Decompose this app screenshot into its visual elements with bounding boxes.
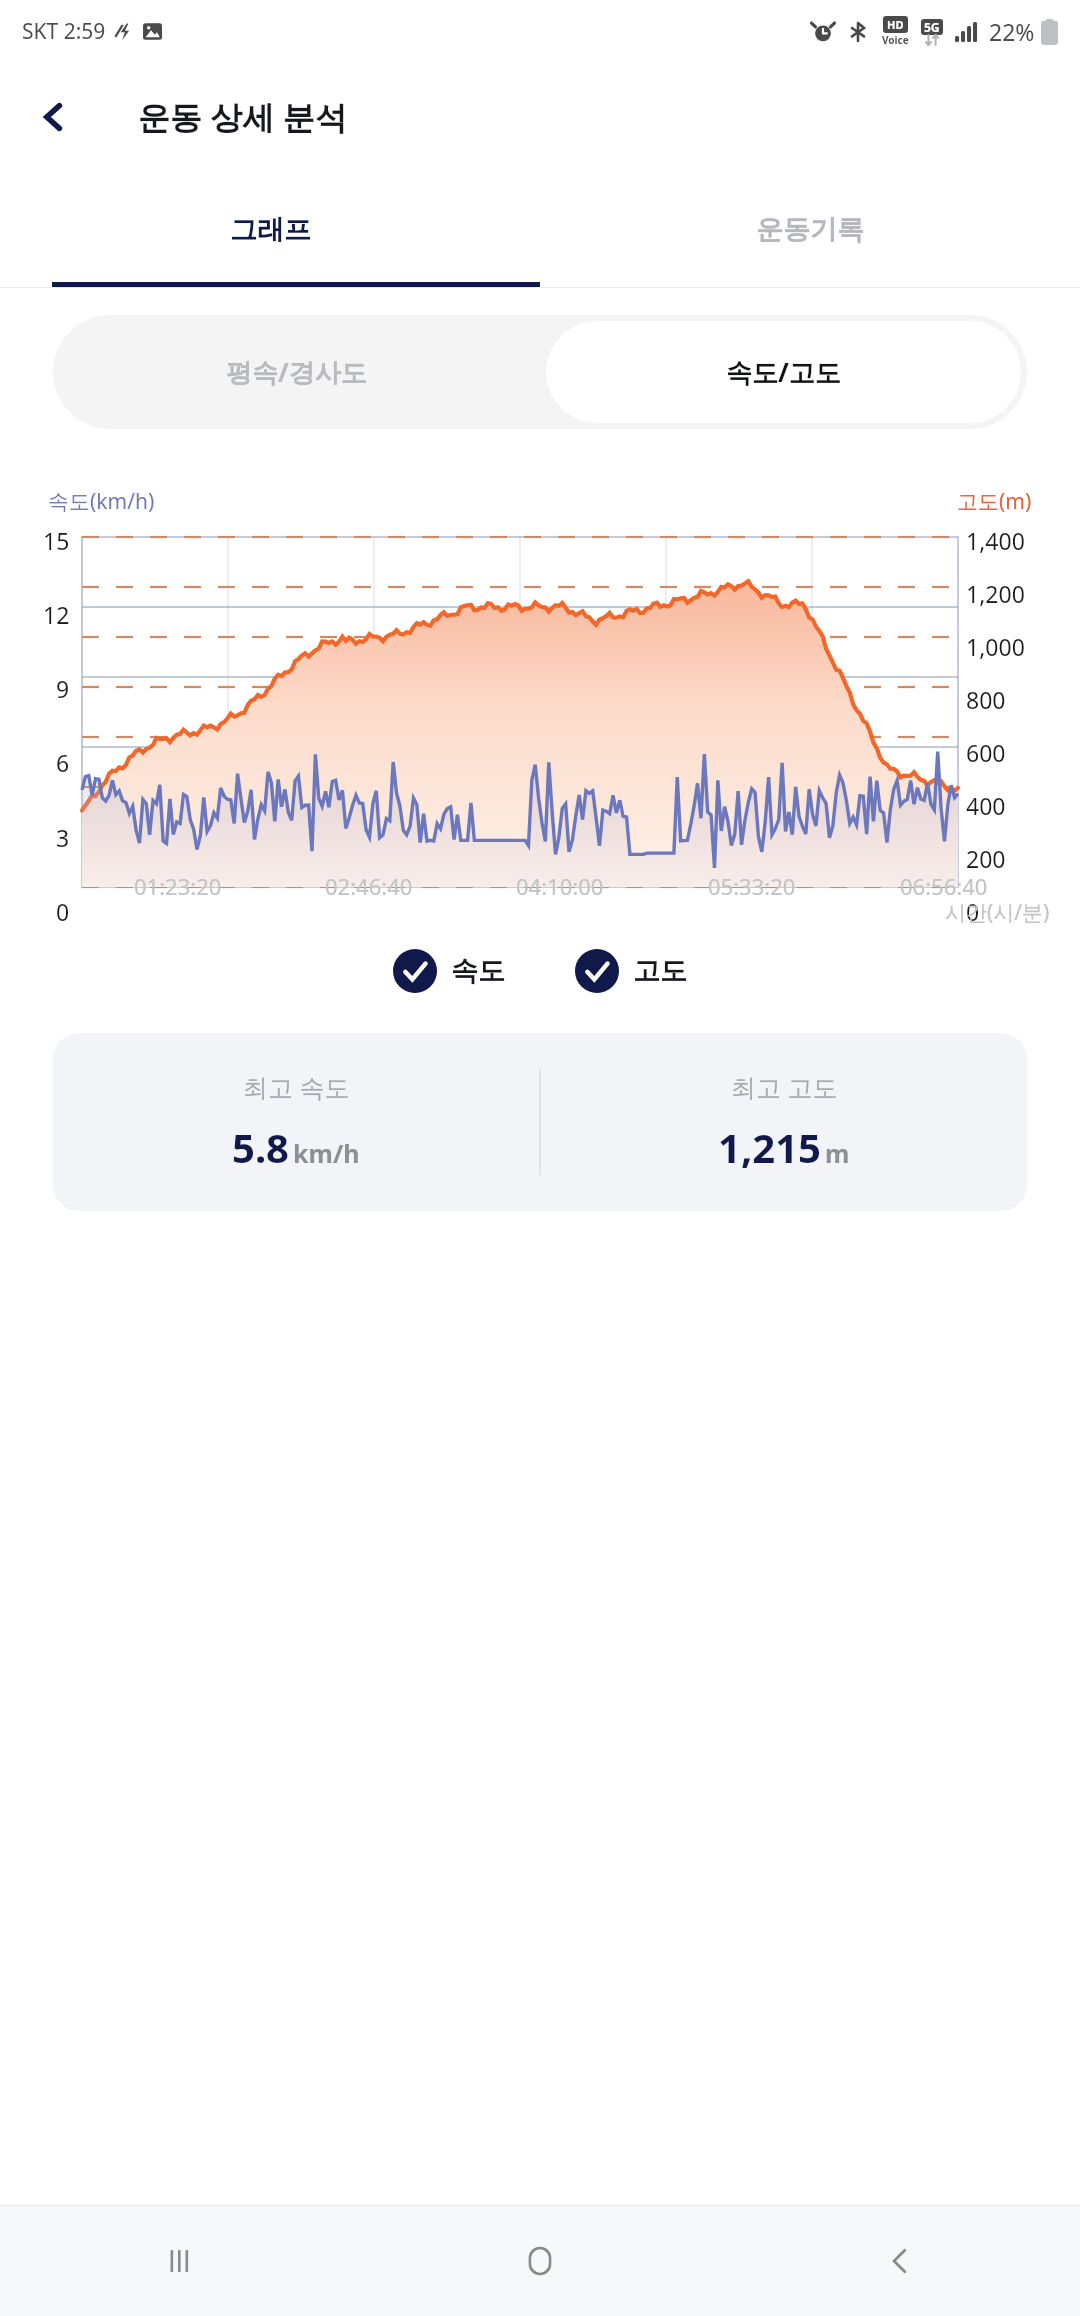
staticText: 속도(km/h) [48,487,155,516]
staticText: m [825,1136,850,1170]
button[interactable]: Back [26,89,82,145]
staticText: 22% [989,16,1035,47]
staticText: 고도 [633,954,687,988]
button[interactable]: Home [360,2206,720,2316]
staticText: 800 [966,684,1006,715]
button[interactable]: Back [720,2206,1080,2316]
staticText: 0 [56,896,70,927]
staticText: 01:23:20 [134,871,222,901]
staticText: Voice [882,33,909,47]
button[interactable]: 고도 [575,949,687,993]
staticText: 운동 상세 분석 [138,95,347,139]
staticText: 3 [56,822,70,853]
button[interactable]: 평속/경사도 [53,315,540,429]
button[interactable]: 속도/고도 [546,321,1021,423]
staticText: 6 [56,747,70,778]
staticText: 평속/경사도 [226,354,367,390]
staticText: 고도(m) [957,487,1032,516]
staticText: 12 [43,599,70,630]
staticText: 02:46:40 [325,871,413,901]
staticText: 04:10:00 [516,871,604,901]
staticText: 15 [43,525,70,556]
staticText: 200 [966,843,1006,874]
staticText: 400 [966,790,1006,821]
button[interactable]: 속도 [393,949,505,993]
staticText: 0 [966,896,980,927]
staticText: HD [887,17,904,32]
staticText: 5G [924,19,940,35]
staticText: 운동기록 [756,213,864,247]
staticText: SKT 2:59 [22,17,106,46]
staticText: 1,400 [966,525,1025,556]
button[interactable]: 그래프 [0,172,540,287]
staticText: 최고 속도 [243,1070,350,1104]
staticText: 05:33:20 [708,871,796,901]
staticText: 1,200 [966,578,1025,609]
staticText: 1,000 [966,631,1025,662]
staticText: 그래프 [230,213,311,247]
button[interactable]: 최고 속도 [53,1033,1027,1211]
button[interactable]: Recents [0,2206,360,2316]
staticText: km/h [293,1136,360,1170]
staticText: 1,215 [718,1120,821,1174]
staticText: 속도/고도 [726,354,841,390]
staticText: 600 [966,737,1006,768]
staticText: 시간(시/분) [945,898,1050,927]
button[interactable]: 운동기록 [540,172,1080,287]
staticText: 9 [56,673,70,704]
staticText: 최고 고도 [731,1070,838,1104]
staticText: 속도 [451,954,505,988]
staticText: 5.8 [232,1120,289,1174]
staticText: 06:56:40 [900,871,988,901]
